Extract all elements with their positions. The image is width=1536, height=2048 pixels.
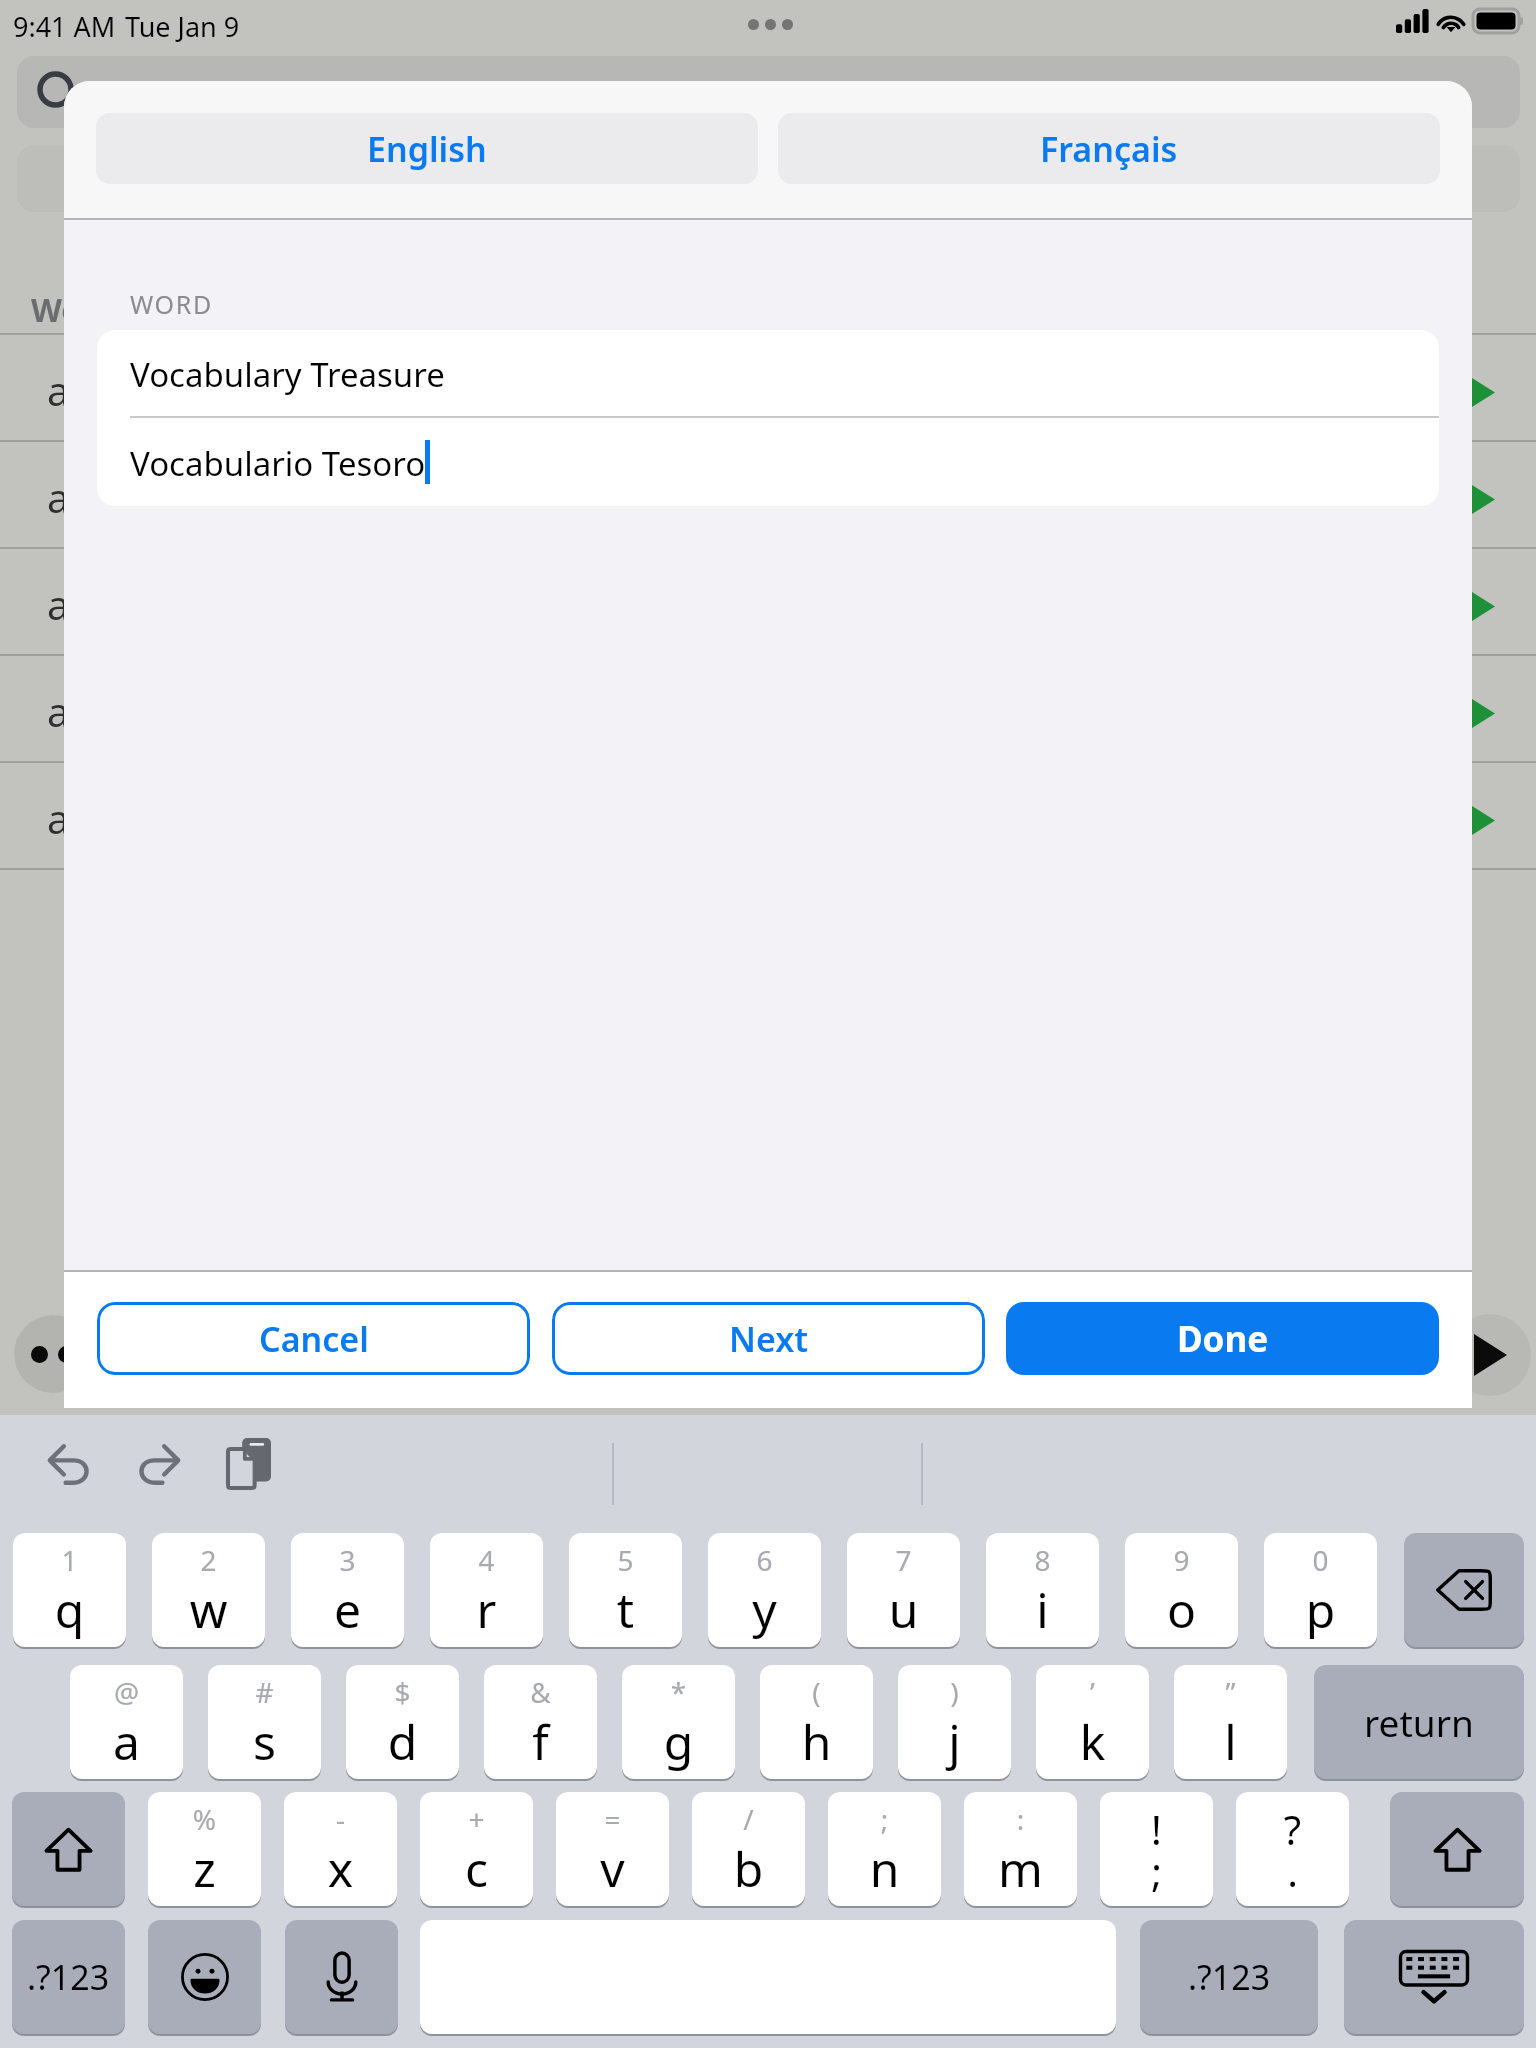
staticText: d (346, 1709, 459, 1774)
button[interactable]: Paste (228, 1438, 271, 1488)
button[interactable]: ( (760, 1665, 873, 1779)
button[interactable]: Search (17, 56, 1520, 128)
staticText: ; (828, 1800, 941, 1838)
staticText: ) (898, 1673, 1011, 1711)
button[interactable]: : (964, 1792, 1077, 1906)
staticText: 3 (291, 1541, 404, 1579)
staticText: c (420, 1836, 533, 1901)
button[interactable]: # (208, 1665, 321, 1779)
staticText: 7 (847, 1541, 960, 1579)
button[interactable]: Play (1449, 1314, 1531, 1396)
staticText: 8 (986, 1541, 1099, 1579)
button[interactable]: Français (778, 113, 1440, 184)
button[interactable]: - (284, 1792, 397, 1906)
staticText: Vocabulary Treasure (130, 352, 445, 397)
button[interactable]: 0 (1264, 1533, 1377, 1647)
staticText: 9 (1125, 1541, 1238, 1579)
button[interactable]: Shift (12, 1792, 125, 1906)
button[interactable]: ’ (1036, 1665, 1149, 1779)
staticText: * (622, 1673, 735, 1711)
button[interactable]: 2 (152, 1533, 265, 1647)
button[interactable]: Next (552, 1302, 985, 1375)
staticText: i (986, 1577, 1099, 1642)
staticText: r (430, 1577, 543, 1642)
staticText: g (622, 1709, 735, 1774)
staticText: a (47, 791, 70, 845)
staticText: - (284, 1800, 397, 1838)
button[interactable]: 7 (847, 1533, 960, 1647)
button[interactable]: / (692, 1792, 805, 1906)
button[interactable]: 5 (569, 1533, 682, 1647)
staticText: h (760, 1709, 873, 1774)
staticText: ’ (1036, 1673, 1149, 1711)
button[interactable]: $ (346, 1665, 459, 1779)
staticText: Français (1040, 126, 1178, 172)
button[interactable]: a (0, 549, 1536, 654)
staticText: WORD (130, 287, 213, 321)
staticText: & (484, 1673, 597, 1711)
button[interactable]: ) (898, 1665, 1011, 1779)
button[interactable]: 8 (986, 1533, 1099, 1647)
button[interactable]: 6 (708, 1533, 821, 1647)
staticText: q (13, 1577, 126, 1642)
button[interactable]: + (420, 1792, 533, 1906)
button[interactable]: .?123 (1140, 1920, 1318, 2034)
staticText: n (828, 1836, 941, 1901)
staticText: o (1125, 1577, 1238, 1642)
button[interactable]: 3 (291, 1533, 404, 1647)
button[interactable]: Done (1006, 1302, 1439, 1375)
button[interactable]: Dictation (285, 1920, 398, 2034)
button[interactable]: @ (70, 1665, 183, 1779)
button[interactable]: Hide keyboard (1344, 1920, 1524, 2034)
staticText: Words (31, 288, 132, 332)
button[interactable]: a (0, 656, 1536, 761)
staticText: l (1174, 1709, 1287, 1774)
button[interactable]: & (484, 1665, 597, 1779)
staticText: f (484, 1709, 597, 1774)
button[interactable]: Vocabulario Tesoro (97, 418, 1439, 506)
staticText: @ (70, 1673, 183, 1711)
staticText: 0 (1264, 1541, 1377, 1579)
button[interactable]: 1 (13, 1533, 126, 1647)
staticText: t (569, 1577, 682, 1642)
staticText: Tue Jan 9 (125, 8, 240, 45)
button[interactable]: ? (1236, 1792, 1349, 1906)
button[interactable]: Undo (48, 1441, 92, 1485)
button[interactable]: 9 (1125, 1533, 1238, 1647)
button[interactable]: 4 (430, 1533, 543, 1647)
button[interactable]: Redo (136, 1441, 180, 1485)
button[interactable]: Emoji (148, 1920, 261, 2034)
button[interactable]: ” (1174, 1665, 1287, 1779)
staticText: k (1036, 1709, 1149, 1774)
button[interactable]: Vocabulary Treasure (97, 330, 1439, 416)
button[interactable]: ; (828, 1792, 941, 1906)
staticText: 2 (152, 1541, 265, 1579)
button[interactable]: return (1314, 1665, 1524, 1779)
button[interactable]: .?123 (12, 1920, 125, 2034)
button[interactable]: ! (1100, 1792, 1213, 1906)
button[interactable]: a (0, 335, 1536, 440)
button[interactable]: Backspace (1404, 1533, 1524, 1647)
button[interactable]: More (14, 1315, 92, 1393)
button[interactable]: Shift (1390, 1792, 1524, 1906)
staticText: English (367, 126, 487, 172)
staticText: Done (1177, 1315, 1269, 1363)
staticText: b (692, 1836, 805, 1901)
staticText: p (1264, 1577, 1377, 1642)
button[interactable]: = (556, 1792, 669, 1906)
button[interactable]: English (96, 113, 758, 184)
button[interactable]: a (0, 442, 1536, 547)
button[interactable]: % (148, 1792, 261, 1906)
staticText: Cancel (259, 1316, 369, 1362)
staticText: ” (1174, 1673, 1287, 1711)
staticText: + (420, 1800, 533, 1838)
button[interactable]: a (0, 763, 1536, 868)
button[interactable]: * (622, 1665, 735, 1779)
staticText: a (47, 363, 70, 417)
staticText: v (556, 1836, 669, 1901)
staticText: ( (760, 1673, 873, 1711)
staticText: = (556, 1800, 669, 1838)
button[interactable]: Cancel (97, 1302, 530, 1375)
staticText: $ (346, 1673, 459, 1711)
